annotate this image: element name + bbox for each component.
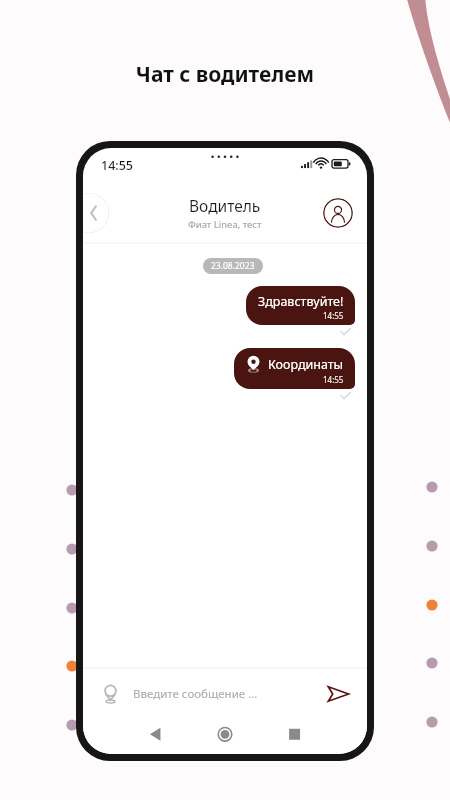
- staticText: 14:55: [323, 310, 344, 321]
- button[interactable]: Здравствуйте!: [246, 286, 355, 325]
- staticText: Чат с водителем: [0, 60, 450, 89]
- staticText: Здравствуйте!: [258, 293, 344, 310]
- staticText: Водитель: [189, 195, 261, 216]
- staticText: Введите сообщение ...: [133, 686, 258, 702]
- button[interactable]: Send: [323, 679, 353, 709]
- staticText: 14:55: [101, 157, 134, 174]
- button[interactable]: Attach location: [97, 681, 123, 707]
- staticText: 23.08.2023: [211, 260, 255, 272]
- staticText: Координаты: [268, 356, 344, 373]
- staticText: Фиат Linea, тест: [188, 218, 262, 231]
- button[interactable]: Back: [83, 193, 109, 233]
- button[interactable]: Profile: [323, 198, 353, 228]
- button[interactable]: Введите сообщение ...: [133, 686, 323, 702]
- staticText: 14:55: [323, 374, 344, 385]
- button[interactable]: Координаты: [234, 348, 355, 389]
